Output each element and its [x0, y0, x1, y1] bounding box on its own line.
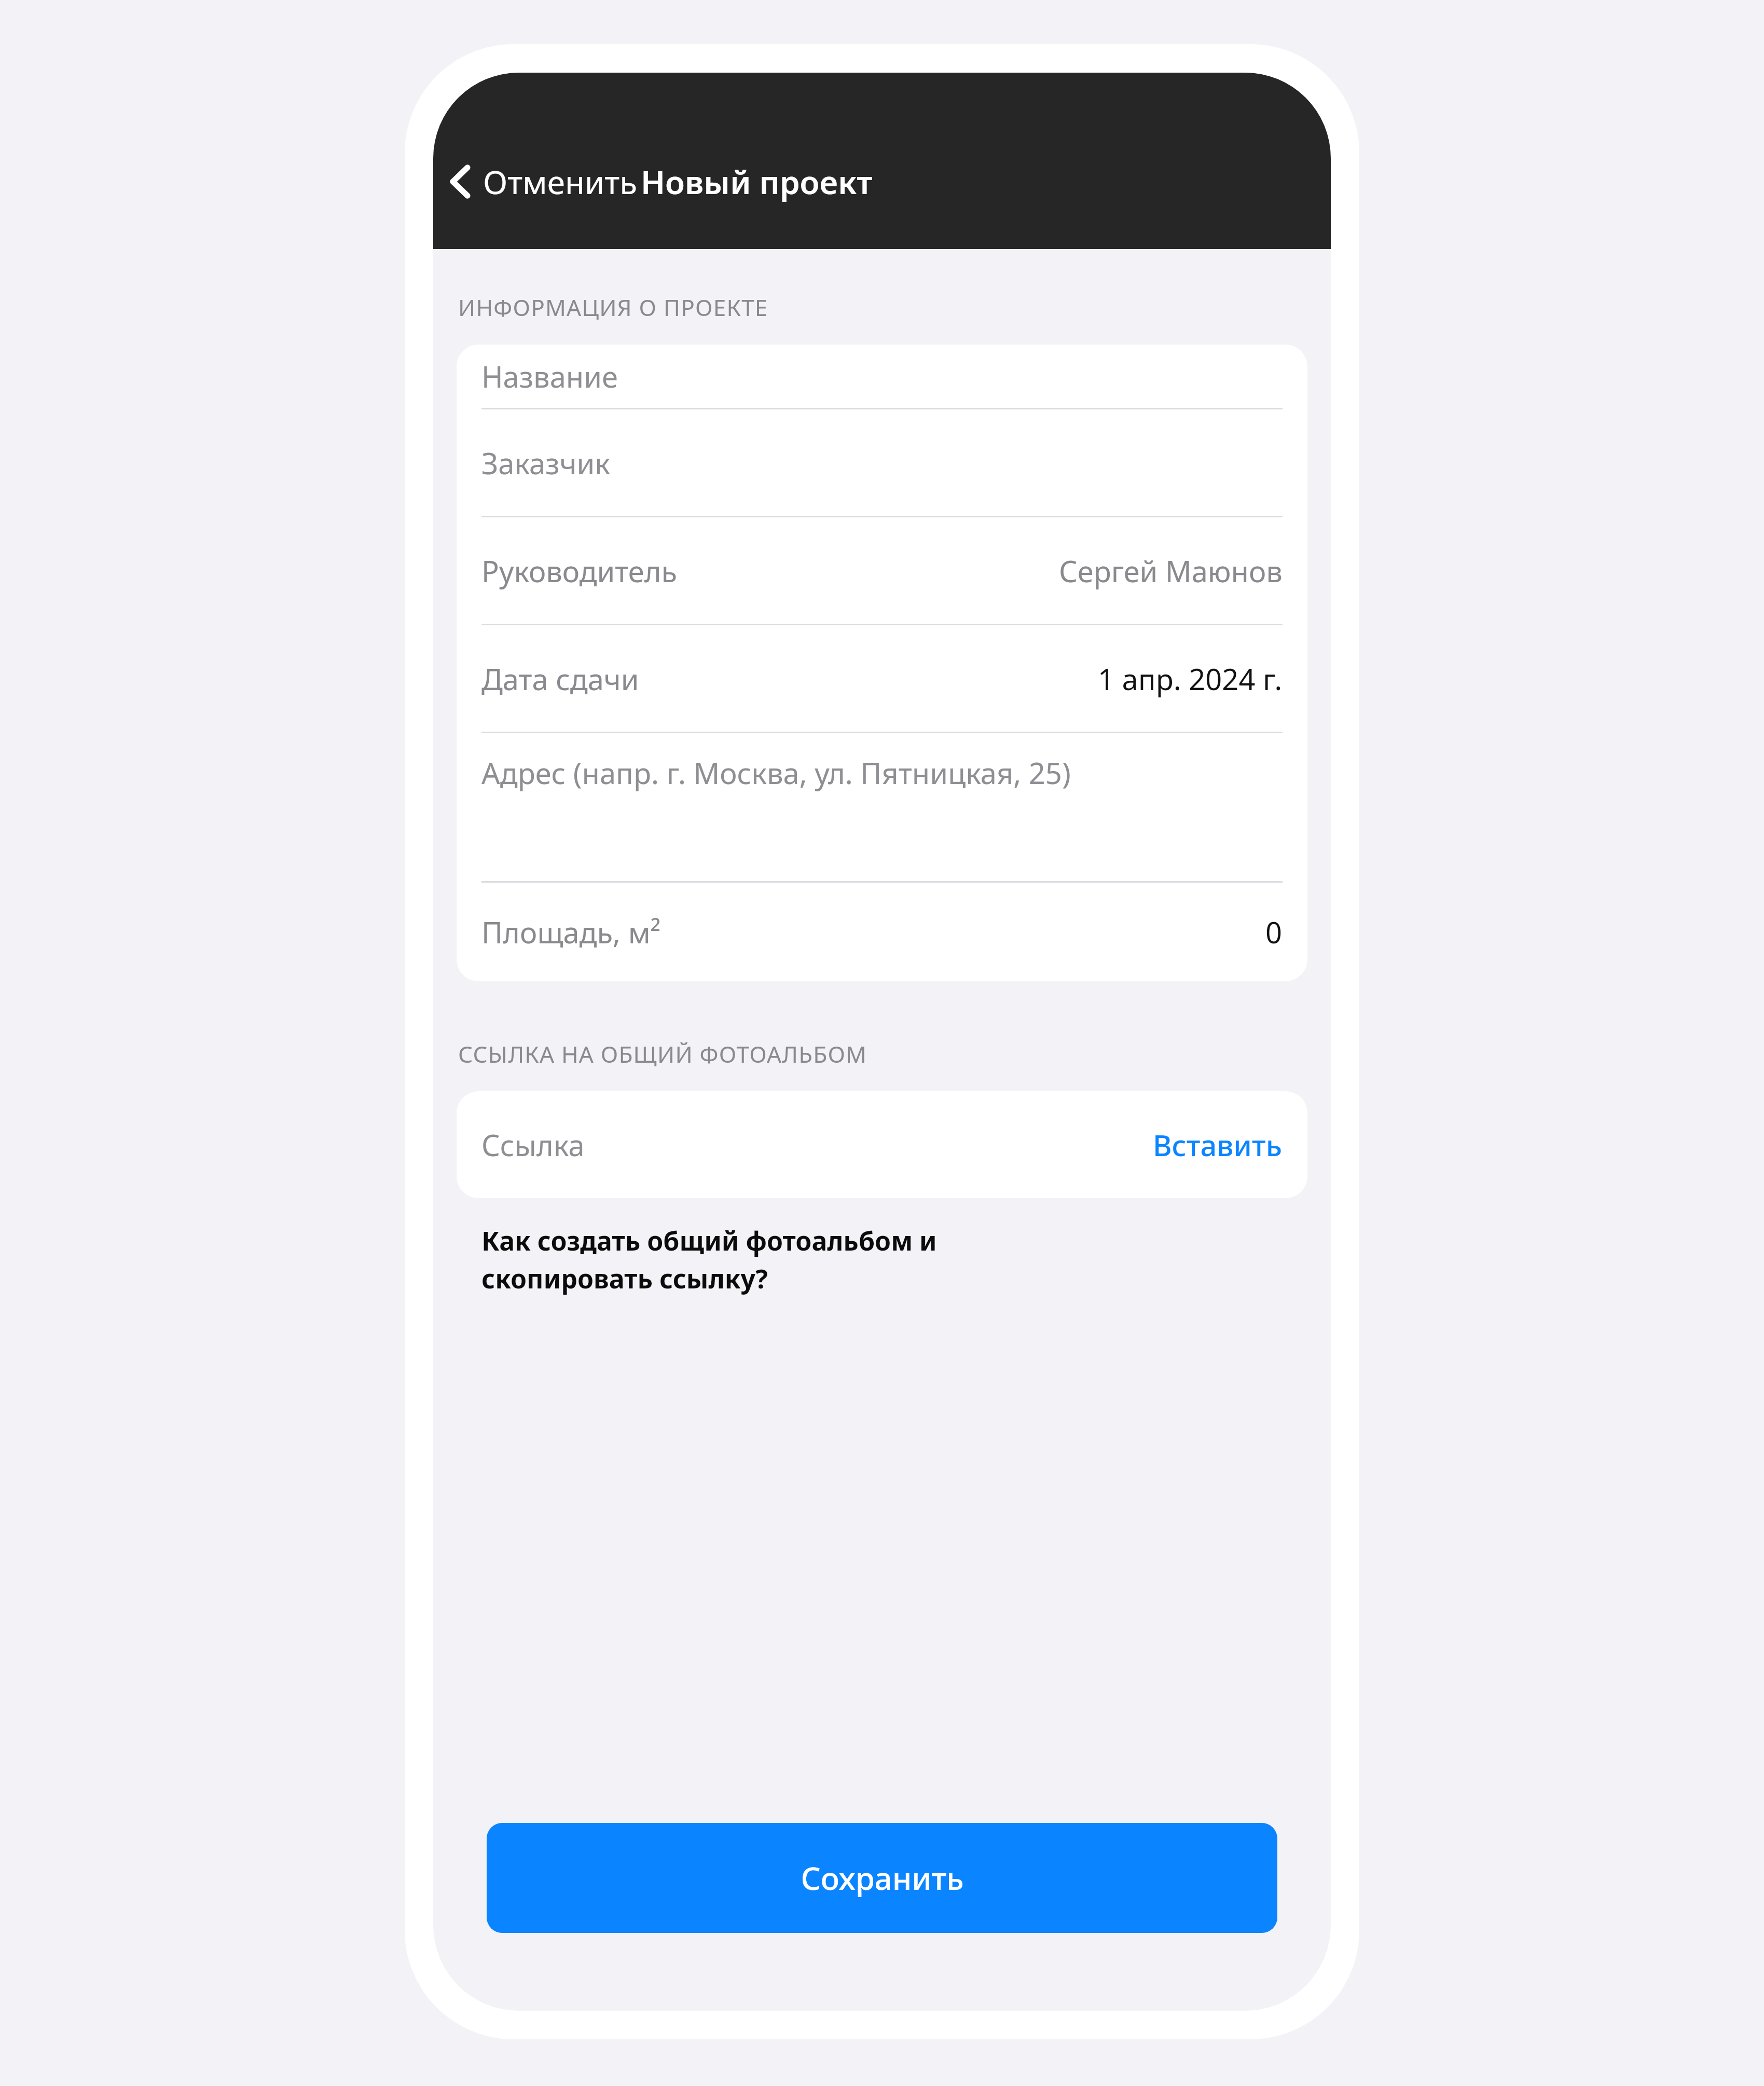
staticText: ССЫЛКА НА ОБЩИЙ ФОТОАЛЬБОМ — [458, 1038, 867, 1069]
staticText: Вставить — [1153, 1125, 1283, 1164]
staticText: 1 апр. 2024 г. — [1098, 659, 1283, 698]
staticText: Сохранить — [801, 1857, 964, 1899]
button[interactable]: Ссылка — [457, 1091, 1307, 1198]
button[interactable]: Отменить — [444, 152, 642, 212]
staticText: Ссылка — [481, 1125, 585, 1164]
button[interactable]: Площадь, м² — [457, 883, 1307, 981]
button[interactable]: Дата сдачи — [457, 625, 1307, 732]
button[interactable]: Название — [457, 345, 1307, 408]
button[interactable]: Как создать общий фотоальбом и скопирова… — [481, 1223, 937, 1296]
staticText: Новый проект — [641, 160, 873, 203]
staticText: Площадь, м² — [481, 912, 661, 952]
button[interactable]: Сохранить — [487, 1823, 1277, 1933]
staticText: Руководитель — [481, 551, 678, 591]
button[interactable]: Руководитель — [457, 517, 1307, 624]
staticText: Отменить — [483, 160, 637, 203]
button[interactable]: Заказчик — [457, 409, 1307, 516]
staticText: Адрес (напр. г. Москва, ул. Пятницкая, 2… — [481, 753, 1071, 792]
staticText: Дата сдачи — [481, 659, 639, 698]
button[interactable]: Адрес (напр. г. Москва, ул. Пятницкая, 2… — [457, 733, 1307, 881]
staticText: Сергей Маюнов — [1059, 551, 1283, 591]
staticText: Название — [481, 356, 618, 396]
staticText: ИНФОРМАЦИЯ О ПРОЕКТЕ — [458, 292, 768, 323]
staticText: 0 — [1265, 912, 1283, 952]
staticText: Заказчик — [481, 443, 611, 483]
